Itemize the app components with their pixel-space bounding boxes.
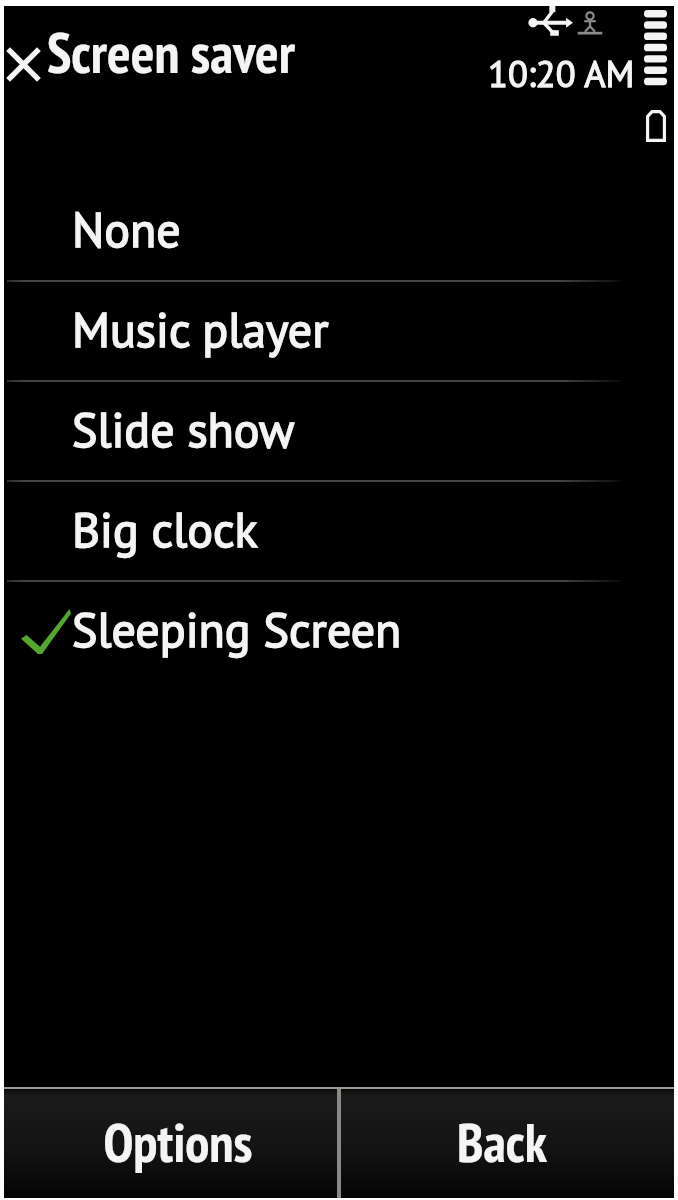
button[interactable]: Big clock: [4, 482, 674, 582]
other: USB connected: [530, 6, 573, 37]
staticText: None: [72, 198, 181, 260]
button[interactable]: Close: [0, 36, 51, 92]
staticText: Options: [103, 1107, 253, 1177]
staticText: Big clock: [72, 498, 258, 560]
staticText: Screen saver: [47, 17, 296, 89]
staticText: None: [72, 198, 181, 260]
staticText: Sleeping Screen: [72, 598, 402, 660]
button[interactable]: Back: [341, 1089, 674, 1198]
staticText: Music player: [72, 298, 329, 360]
staticText: Big clock: [72, 498, 258, 560]
staticText: 10:20 AM: [488, 50, 635, 97]
button[interactable]: Slide show: [4, 382, 674, 482]
button[interactable]: None: [4, 182, 674, 282]
staticText: Slide show: [72, 398, 295, 460]
button[interactable]: Sleeping Screen: [4, 582, 674, 682]
button[interactable]: Options: [4, 1089, 337, 1198]
other: Signal strength: [644, 10, 667, 89]
staticText: Sleeping Screen: [72, 598, 402, 660]
button[interactable]: Music player: [4, 282, 674, 382]
other: Battery: [646, 110, 666, 142]
staticText: Music player: [72, 298, 329, 360]
staticText: 10:20 AM: [488, 50, 635, 97]
staticText: Back: [457, 1107, 547, 1177]
staticText: Slide show: [72, 398, 295, 460]
